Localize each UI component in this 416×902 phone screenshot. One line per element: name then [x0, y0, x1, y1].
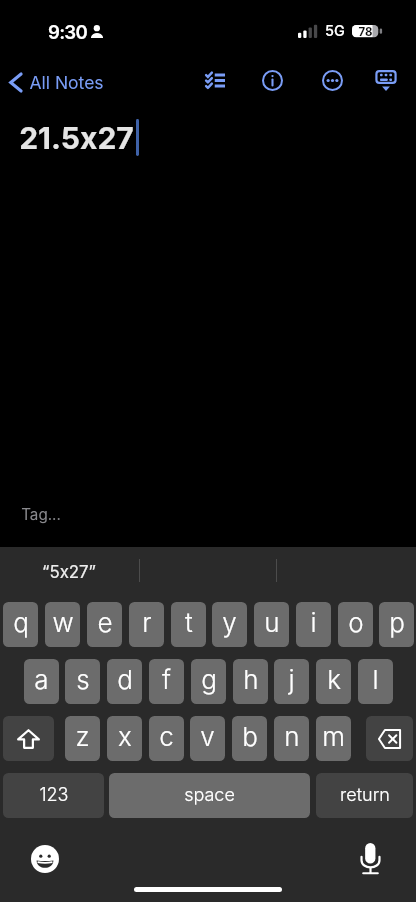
button[interactable]: z — [65, 716, 100, 761]
button[interactable]: j — [274, 659, 309, 704]
button[interactable]: u — [254, 602, 289, 647]
staticText: v — [200, 721, 215, 752]
staticText: “5x27” — [42, 562, 96, 582]
staticText: All Notes — [29, 72, 104, 93]
button[interactable]: Info — [253, 61, 291, 99]
staticText: u — [264, 607, 280, 638]
button[interactable]: v — [190, 716, 225, 761]
staticText: t — [185, 607, 193, 638]
staticText: 21.5x27 — [19, 120, 134, 156]
button[interactable]: m — [316, 716, 351, 761]
button[interactable]: Emoji keyboard — [22, 836, 67, 881]
staticText: w — [52, 607, 74, 638]
button[interactable]: space — [109, 773, 310, 818]
staticText: z — [75, 721, 90, 752]
staticText: 123 — [39, 784, 69, 806]
staticText: y — [222, 607, 237, 638]
staticText: j — [288, 664, 295, 695]
button[interactable]: w — [45, 602, 80, 647]
staticText: return — [340, 784, 390, 806]
staticText: r — [142, 607, 152, 638]
button[interactable]: Hide keyboard — [367, 61, 405, 99]
button[interactable]: 123 — [3, 773, 104, 818]
staticText: space — [184, 784, 235, 806]
button[interactable]: n — [274, 716, 309, 761]
staticText: s — [76, 664, 90, 695]
staticText: m — [322, 721, 345, 752]
button[interactable]: x — [107, 716, 142, 761]
button[interactable]: Dictation — [348, 836, 393, 881]
staticText: p — [389, 607, 405, 638]
staticText: a — [34, 664, 49, 695]
staticText: d — [117, 664, 133, 695]
staticText: g — [201, 664, 217, 695]
button[interactable]: return — [316, 773, 413, 818]
staticText: 9:30 — [48, 21, 87, 44]
button[interactable]: All Notes — [4, 62, 112, 102]
staticText: k — [327, 664, 341, 695]
button[interactable]: k — [316, 659, 351, 704]
button[interactable]: Shift — [3, 716, 54, 761]
staticText: o — [348, 607, 364, 638]
staticText: q — [13, 607, 29, 638]
button[interactable]: g — [191, 659, 226, 704]
button[interactable]: Backspace — [366, 716, 413, 761]
staticText: e — [97, 607, 113, 638]
staticText: x — [118, 721, 132, 752]
button[interactable]: y — [212, 602, 247, 647]
staticText: c — [159, 721, 174, 752]
staticText: b — [242, 721, 258, 752]
button[interactable]: p — [379, 602, 414, 647]
staticText: Tag... — [21, 505, 61, 523]
staticText: f — [162, 664, 171, 695]
button[interactable]: q — [3, 602, 38, 647]
staticText: i — [310, 607, 317, 638]
button[interactable]: More options — [313, 61, 351, 99]
button[interactable]: e — [87, 602, 122, 647]
staticText: 78 — [358, 25, 373, 38]
button[interactable]: d — [107, 659, 142, 704]
button[interactable]: o — [338, 602, 373, 647]
button[interactable]: t — [171, 602, 206, 647]
button[interactable]: r — [129, 602, 164, 647]
staticText: n — [284, 721, 300, 752]
button[interactable]: b — [232, 716, 267, 761]
button[interactable]: h — [233, 659, 268, 704]
button[interactable]: c — [149, 716, 184, 761]
button[interactable]: Checklist — [196, 61, 234, 99]
button[interactable]: l — [358, 659, 393, 704]
button[interactable]: f — [149, 659, 184, 704]
button[interactable]: i — [296, 602, 331, 647]
button[interactable]: a — [24, 659, 59, 704]
staticText: 5G — [325, 22, 345, 40]
staticText: h — [243, 664, 259, 695]
button[interactable]: s — [65, 659, 100, 704]
staticText: l — [372, 664, 379, 695]
